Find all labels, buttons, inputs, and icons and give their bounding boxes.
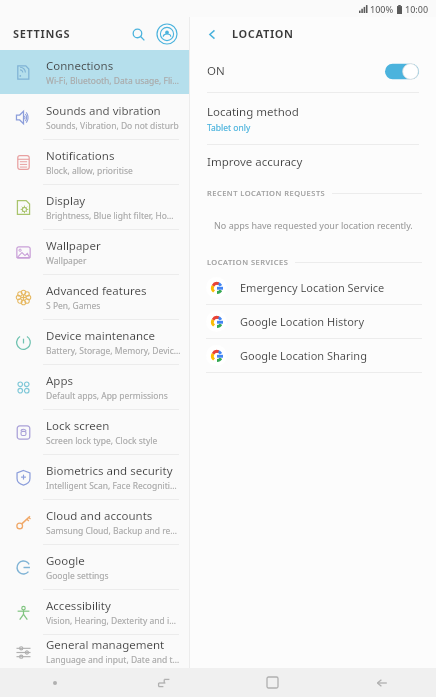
staticText: Accessibility bbox=[46, 598, 111, 614]
staticText: Lock screen bbox=[46, 418, 110, 434]
staticText: Biometrics and security bbox=[46, 463, 173, 479]
staticText: Cloud and accounts bbox=[46, 508, 153, 524]
staticText: No apps have requested your location rec… bbox=[214, 219, 413, 231]
staticText: Device maintenance bbox=[46, 328, 156, 344]
button[interactable]: Display bbox=[0, 185, 189, 229]
staticText: SETTINGS bbox=[13, 26, 71, 41]
staticText: Google Location Sharing bbox=[240, 348, 367, 363]
staticText: Vision, Hearing, Dexterity and intera… bbox=[46, 615, 181, 627]
button[interactable]: Back bbox=[327, 668, 436, 697]
button[interactable]: Google bbox=[0, 545, 189, 589]
staticText: Google Location History bbox=[240, 314, 365, 329]
staticText: Language and input, Date and time,… bbox=[46, 654, 181, 666]
staticText: Default apps, App permissions bbox=[46, 390, 168, 402]
button[interactable]: Search bbox=[125, 21, 151, 47]
staticText: Improve accuracy bbox=[207, 154, 303, 170]
staticText: LOCATION bbox=[232, 26, 294, 41]
button[interactable]: Google Location Sharing bbox=[190, 339, 436, 372]
button[interactable]: Wallpaper bbox=[0, 230, 189, 274]
button[interactable]: Improve accuracy bbox=[190, 145, 436, 178]
button[interactable]: Apps bbox=[0, 365, 189, 409]
staticText: Wallpaper bbox=[46, 238, 101, 254]
staticText: Google settings bbox=[46, 570, 109, 582]
staticText: RECENT LOCATION REQUESTS bbox=[207, 188, 326, 198]
staticText: Wi-Fi, Bluetooth, Data usage, Flight… bbox=[46, 75, 181, 87]
button[interactable]: Sounds and vibration bbox=[0, 95, 189, 139]
staticText: General management bbox=[46, 637, 165, 653]
button[interactable]: Biometrics and security bbox=[0, 455, 189, 499]
staticText: Intelligent Scan, Face Recognition,… bbox=[46, 480, 181, 492]
button[interactable]: Notifications bbox=[0, 140, 189, 184]
staticText: 100% bbox=[370, 3, 394, 15]
button[interactable]: Recents bbox=[109, 668, 218, 697]
button[interactable]: Advanced features bbox=[0, 275, 189, 319]
button[interactable]: Locating method bbox=[190, 93, 436, 144]
staticText: Sounds, Vibration, Do not disturb bbox=[46, 120, 179, 132]
button[interactable]: Cloud and accounts bbox=[0, 500, 189, 544]
button[interactable]: Account bbox=[153, 20, 181, 48]
button[interactable]: Lock screen bbox=[0, 410, 189, 454]
staticText: Block, allow, prioritise bbox=[46, 165, 133, 177]
staticText: Screen lock type, Clock style bbox=[46, 435, 158, 447]
button[interactable]: Back bbox=[200, 22, 224, 46]
button[interactable]: Device maintenance bbox=[0, 320, 189, 364]
button[interactable]: ON bbox=[190, 50, 436, 92]
staticText: LOCATION SERVICES bbox=[207, 257, 289, 267]
staticText: Locating method bbox=[207, 104, 299, 120]
button[interactable]: Emergency Location Service bbox=[190, 271, 436, 304]
staticText: Samsung Cloud, Backup and restor… bbox=[46, 525, 181, 537]
staticText: Sounds and vibration bbox=[46, 103, 161, 119]
button[interactable]: Accessibility bbox=[0, 590, 189, 634]
staticText: Emergency Location Service bbox=[240, 280, 385, 295]
button[interactable]: Connections bbox=[0, 50, 189, 94]
button[interactable]: General management bbox=[0, 635, 189, 668]
staticText: Display bbox=[46, 193, 86, 209]
staticText: Wallpaper bbox=[46, 255, 87, 267]
staticText: Notifications bbox=[46, 148, 115, 164]
staticText: Brightness, Blue light filter, Home sc… bbox=[46, 210, 181, 222]
button[interactable]: Home bbox=[218, 668, 327, 697]
staticText: ON bbox=[207, 63, 225, 79]
staticText: Connections bbox=[46, 58, 114, 74]
button[interactable]: Google Location History bbox=[190, 305, 436, 338]
staticText: Advanced features bbox=[46, 283, 147, 299]
staticText: Tablet only bbox=[207, 122, 251, 134]
staticText: Google bbox=[46, 553, 85, 569]
staticText: Apps bbox=[46, 373, 74, 389]
staticText: S Pen, Games bbox=[46, 300, 101, 312]
staticText: Battery, Storage, Memory, Device se… bbox=[46, 345, 181, 357]
staticText: 10:00 bbox=[405, 3, 429, 15]
